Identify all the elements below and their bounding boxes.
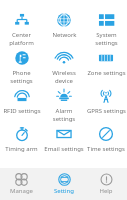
button[interactable]: Center platform bbox=[0, 8, 43, 46]
staticText: Setting bbox=[54, 187, 74, 195]
button[interactable]: RFID settings bbox=[0, 84, 43, 122]
button[interactable]: Alarm settings bbox=[43, 84, 85, 122]
button[interactable]: GPRS settings bbox=[85, 84, 127, 122]
button[interactable]: Wireless device bbox=[43, 46, 85, 84]
button[interactable]: Network bbox=[43, 8, 85, 46]
staticText: Timing arm bbox=[5, 145, 38, 153]
staticText: Network bbox=[52, 31, 77, 39]
staticText: Wireless device bbox=[52, 69, 76, 84]
button[interactable]: Time settings bbox=[85, 122, 127, 160]
staticText: System settings bbox=[95, 31, 118, 46]
button[interactable]: Zone settings bbox=[85, 46, 127, 84]
staticText: Time settings bbox=[87, 145, 125, 153]
button[interactable]: Email settings bbox=[43, 122, 85, 160]
staticText: Zone settings bbox=[87, 69, 126, 77]
staticText: Phone settings bbox=[1, 69, 42, 84]
button[interactable]: Phone settings bbox=[0, 46, 43, 84]
staticText: Help bbox=[99, 187, 113, 195]
button[interactable]: Help bbox=[85, 168, 127, 200]
staticText: RFID settings bbox=[3, 107, 41, 115]
button[interactable]: System settings bbox=[85, 8, 127, 46]
button[interactable]: Timing arm bbox=[0, 122, 43, 160]
staticText: Email settings bbox=[44, 145, 84, 153]
staticText: Center platform bbox=[9, 31, 34, 46]
staticText: Manage bbox=[10, 187, 33, 195]
staticText: Alarm settings bbox=[44, 107, 84, 122]
staticText: GPRS settings bbox=[87, 107, 126, 115]
button[interactable]: Setting bbox=[43, 168, 85, 200]
button[interactable]: Manage bbox=[0, 168, 43, 200]
